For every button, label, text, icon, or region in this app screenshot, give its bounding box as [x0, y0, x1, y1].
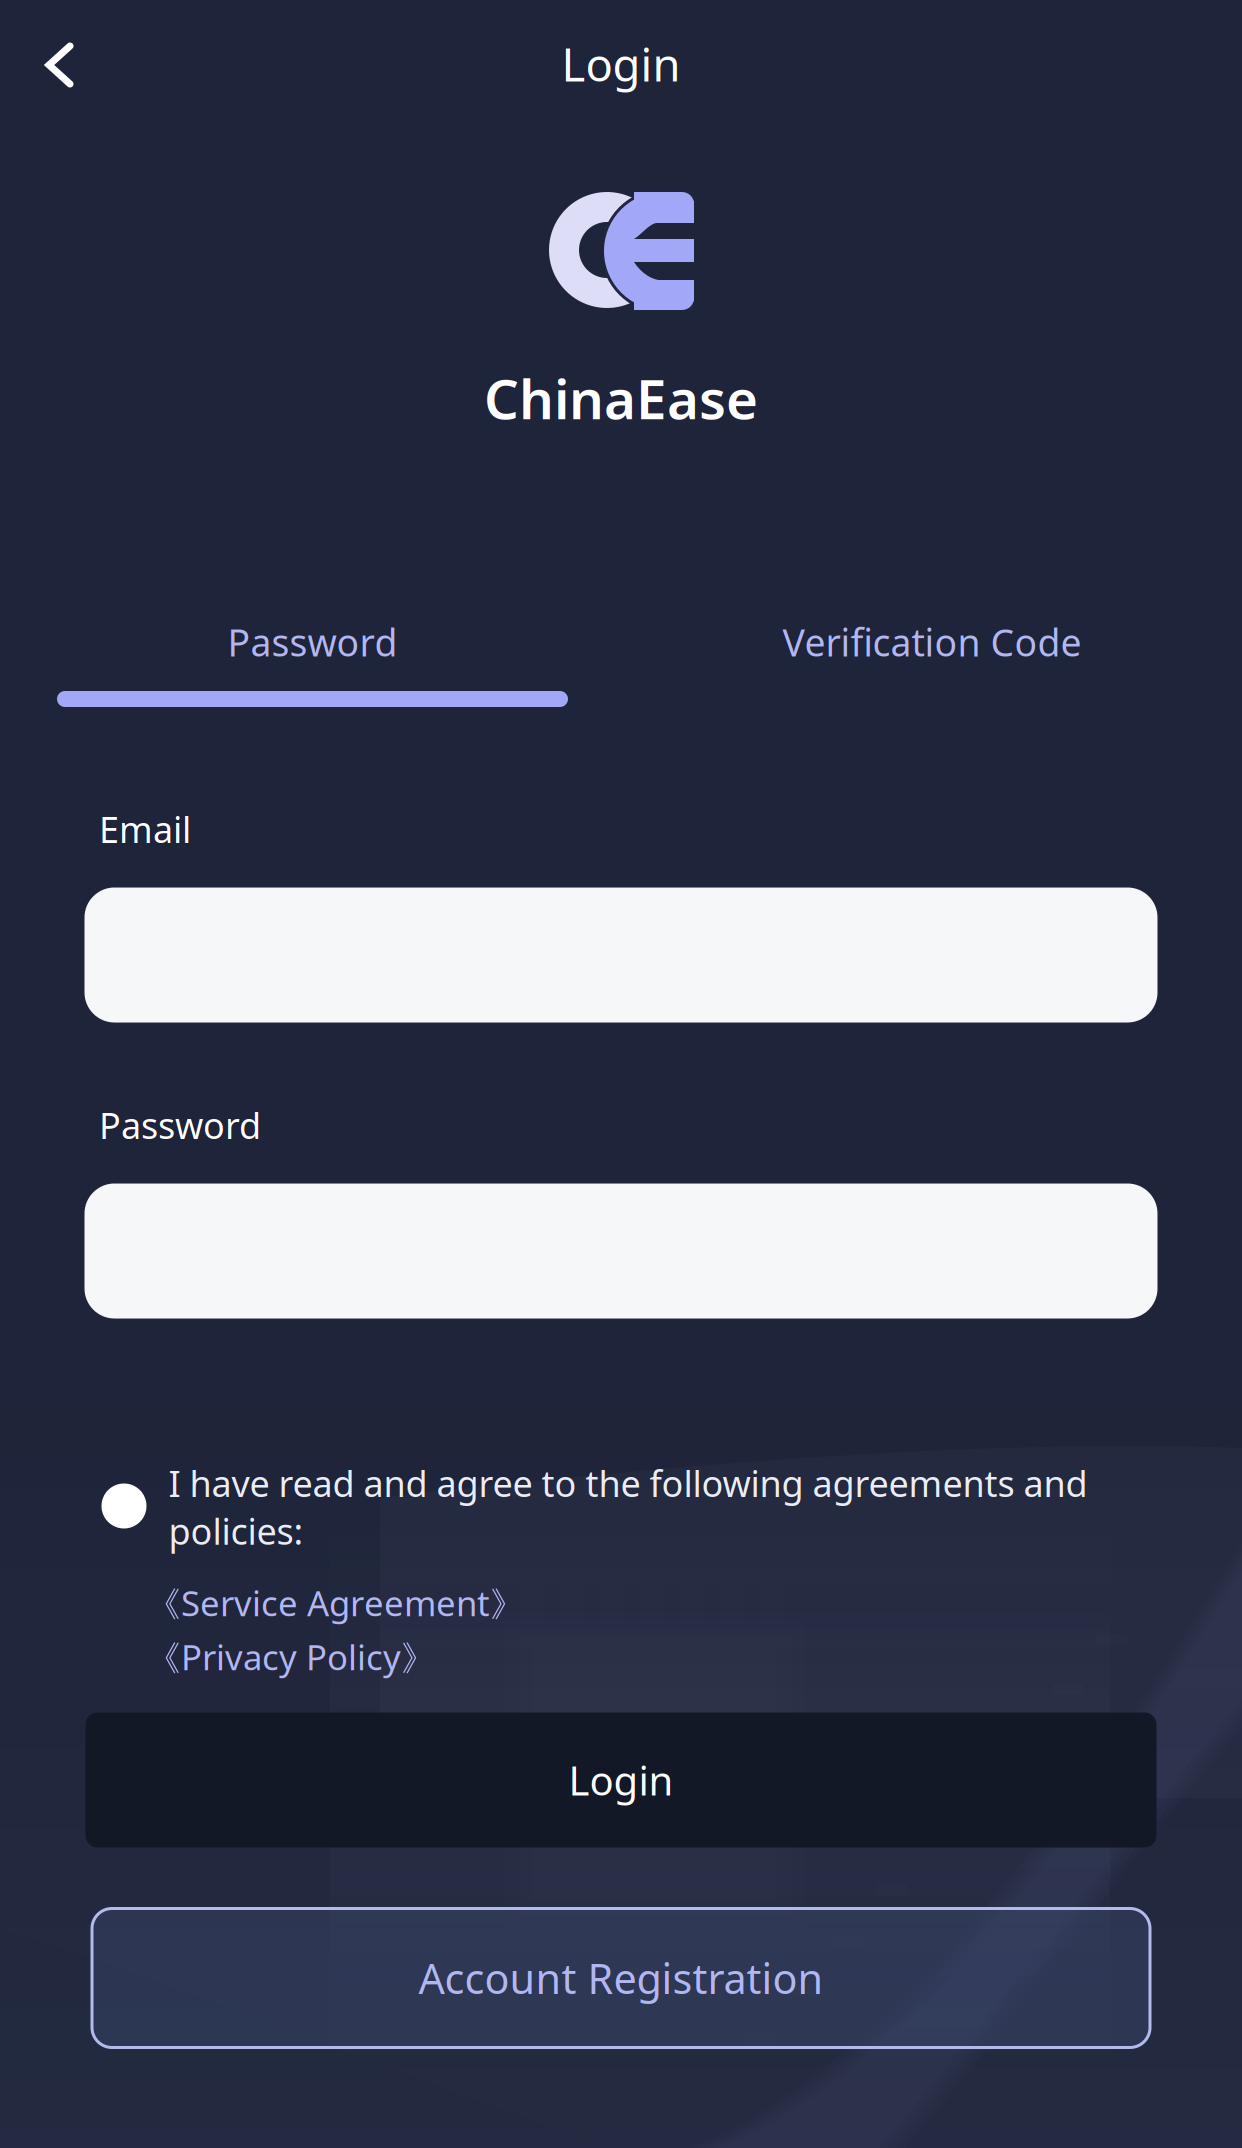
staticText: 《Privacy Policy》	[146, 1634, 436, 1680]
button[interactable]: Password	[57, 587, 568, 707]
staticText: I have read and agree to the following a…	[168, 1459, 1087, 1555]
button[interactable]: Account Registration	[92, 1908, 1150, 2047]
button[interactable]: Verification Code	[676, 587, 1187, 707]
button[interactable]: 《Service Agreement》	[146, 1578, 646, 1628]
staticText: Verification Code	[782, 617, 1081, 667]
staticText: Email	[99, 805, 191, 853]
button[interactable]: Back	[12, 17, 108, 113]
staticText: Password	[227, 617, 397, 667]
button[interactable]: Agree to terms and policies	[77, 1459, 171, 1553]
button[interactable]: 《Privacy Policy》	[146, 1632, 646, 1682]
staticText: Password	[99, 1101, 261, 1149]
staticText: Login	[561, 34, 680, 94]
staticText: Account Registration	[418, 1951, 823, 2005]
staticText: 《Service Agreement》	[146, 1580, 525, 1626]
button[interactable]: Login	[85, 1712, 1156, 1847]
staticText: ChinaEase	[484, 362, 758, 434]
staticText: Login	[568, 1753, 673, 1806]
